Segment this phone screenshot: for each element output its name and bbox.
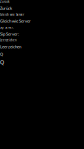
staticText: Zurück	[0, 5, 12, 11]
staticText: Sip Server:	[0, 26, 14, 29]
staticText: Q	[0, 59, 4, 66]
staticText: Leerzeichen	[0, 39, 17, 42]
staticText: Gleich wie Server	[0, 18, 31, 24]
staticText: Gleich wie Server	[0, 13, 24, 16]
staticText: Q	[0, 51, 3, 57]
staticText: Leerzeichen	[0, 44, 21, 49]
staticText: Sip Server:	[0, 31, 19, 37]
staticText: Zurück	[0, 0, 9, 3]
